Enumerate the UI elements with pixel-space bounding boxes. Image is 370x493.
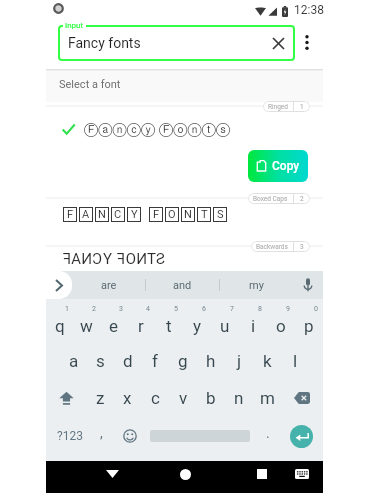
- staticText: N: [81, 250, 92, 268]
- button[interactable]: 7: [211, 305, 239, 341]
- staticText: C: [114, 208, 122, 221]
- button[interactable]: a: [60, 343, 87, 379]
- button[interactable]: 5: [155, 305, 183, 341]
- staticText: Fancy fonts: [68, 35, 141, 51]
- button[interactable]: my: [220, 271, 293, 299]
- staticText: N: [184, 208, 192, 221]
- staticText: x: [123, 388, 132, 408]
- staticText: p: [304, 316, 314, 336]
- staticText: S: [156, 250, 165, 268]
- button[interactable]: l: [281, 343, 309, 379]
- button[interactable]: 1: [46, 305, 73, 341]
- staticText: are: [101, 279, 117, 292]
- staticText: and: [173, 279, 192, 292]
- button[interactable]: c: [141, 380, 169, 416]
- button[interactable]: Expand suggestions: [46, 271, 72, 299]
- button[interactable]: 4: [127, 305, 155, 341]
- button[interactable]: z: [87, 380, 114, 416]
- button[interactable]: More options: [296, 27, 318, 57]
- button[interactable]: F: [46, 247, 323, 271]
- button[interactable]: n: [225, 380, 253, 416]
- staticText: Copy: [272, 159, 300, 173]
- button[interactable]: Shift: [46, 380, 87, 416]
- button[interactable]: Switch keyboard: [289, 461, 315, 487]
- button[interactable]: 3: [100, 305, 127, 341]
- button[interactable]: k: [253, 343, 281, 379]
- staticText: e: [109, 316, 119, 336]
- staticText: y: [193, 316, 202, 336]
- staticText: v: [179, 388, 188, 408]
- staticText: N: [136, 250, 147, 268]
- button[interactable]: Voice input: [293, 271, 323, 299]
- staticText: Boxed Caps: [253, 195, 288, 203]
- staticText: 5: [174, 305, 178, 313]
- staticText: 1: [300, 103, 304, 111]
- button[interactable]: v: [169, 380, 197, 416]
- button[interactable]: 0: [295, 305, 323, 341]
- button[interactable]: Fancy fonts: [58, 25, 295, 61]
- button[interactable]: Home: [172, 461, 198, 487]
- button[interactable]: are: [72, 271, 145, 299]
- button[interactable]: Emoji: [110, 418, 150, 454]
- button[interactable]: d: [114, 343, 141, 379]
- button[interactable]: ?123: [46, 418, 93, 454]
- button[interactable]: Ⓕⓐⓝⓒⓨ Ⓕⓞⓝⓣⓢ: [46, 115, 323, 143]
- button[interactable]: Copy: [248, 150, 308, 182]
- staticText: O: [168, 208, 176, 221]
- staticText: O: [125, 250, 136, 268]
- button[interactable]: h: [197, 343, 225, 379]
- button[interactable]: Clear text: [266, 31, 290, 55]
- button[interactable]: m: [253, 380, 281, 416]
- button[interactable]: .: [250, 418, 286, 454]
- staticText: T: [201, 208, 208, 221]
- button[interactable]: Recents: [249, 461, 275, 487]
- staticText: 8: [258, 305, 262, 313]
- button[interactable]: ,: [93, 418, 110, 454]
- staticText: S: [217, 208, 224, 221]
- staticText: A: [71, 250, 81, 268]
- staticText: Input: [65, 21, 84, 30]
- staticText: z: [96, 388, 105, 408]
- staticText: F: [67, 208, 74, 221]
- staticText: w: [80, 316, 93, 336]
- staticText: A: [82, 208, 90, 221]
- button[interactable]: 2: [73, 305, 100, 341]
- staticText: i: [251, 316, 256, 336]
- staticText: b: [206, 388, 216, 408]
- staticText: h: [206, 351, 216, 371]
- staticText: q: [55, 316, 65, 336]
- button[interactable]: 8: [239, 305, 267, 341]
- button[interactable]: Backspace: [281, 380, 323, 416]
- staticText: g: [178, 351, 188, 371]
- button[interactable]: 6: [183, 305, 211, 341]
- staticText: T: [147, 250, 156, 268]
- button[interactable]: j: [225, 343, 253, 379]
- button[interactable]: F: [46, 201, 323, 227]
- button[interactable]: 9: [267, 305, 295, 341]
- button[interactable]: g: [169, 343, 197, 379]
- button[interactable]: Back: [99, 461, 125, 487]
- button[interactable]: s: [87, 343, 114, 379]
- button[interactable]: Space: [150, 418, 250, 454]
- staticText: 4: [146, 305, 150, 313]
- button[interactable]: x: [114, 380, 141, 416]
- staticText: f: [152, 351, 158, 371]
- staticText: Backwards: [256, 243, 288, 251]
- staticText: 7: [230, 305, 234, 313]
- staticText: j: [237, 351, 242, 371]
- staticText: Select a font: [59, 78, 121, 91]
- staticText: d: [123, 351, 133, 371]
- staticText: 3: [300, 243, 304, 251]
- staticText: 9: [286, 305, 290, 313]
- staticText: 1: [65, 305, 69, 313]
- button[interactable]: and: [146, 271, 219, 299]
- button[interactable]: b: [197, 380, 225, 416]
- staticText: my: [249, 279, 264, 292]
- button[interactable]: f: [141, 343, 169, 379]
- staticText: .: [266, 425, 270, 441]
- staticText: m: [260, 388, 275, 408]
- button[interactable]: Enter: [286, 418, 323, 454]
- staticText: 12:38: [294, 3, 324, 17]
- staticText: 2: [300, 195, 304, 203]
- staticText: u: [220, 316, 230, 336]
